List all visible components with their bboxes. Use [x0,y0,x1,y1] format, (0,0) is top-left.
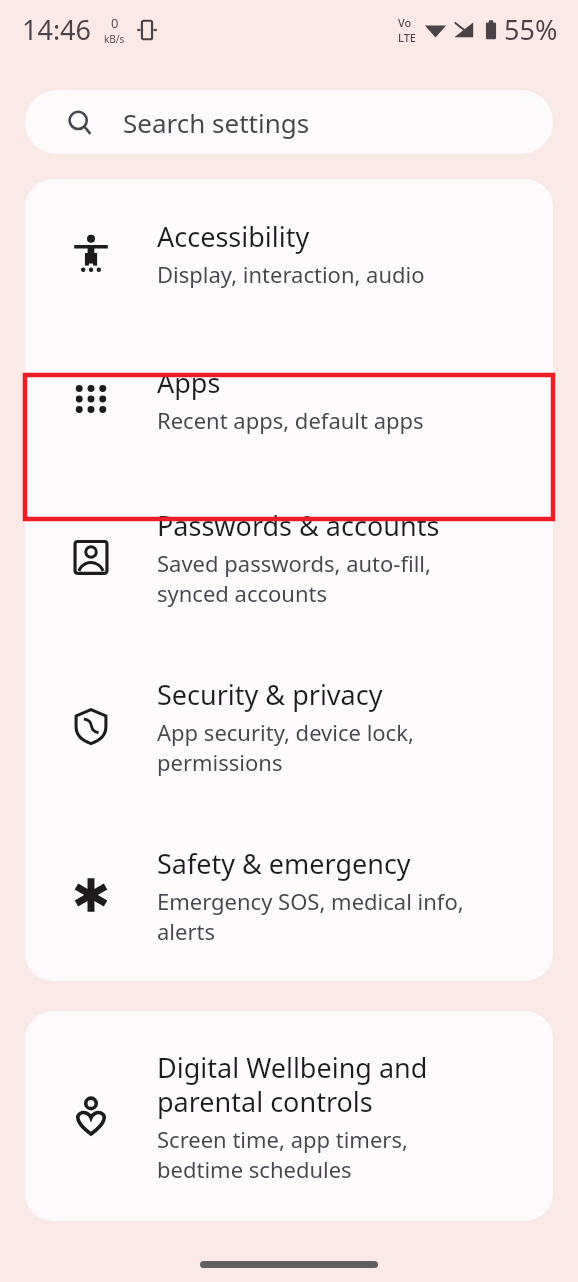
staticText: Digital Wellbeing and parental controls [157,1049,428,1120]
staticText: Vo [398,15,412,30]
staticText: Emergency SOS, medical info, alerts [157,886,464,946]
staticText: Apps [157,364,221,401]
staticText: Saved passwords, auto-fill, synced accou… [157,548,431,608]
staticText: Security & privacy [157,676,383,713]
button[interactable]: Passwords and accounts [25,471,553,643]
staticText: LTE [398,30,416,45]
button[interactable]: Digital Wellbeing and parental controls [25,1011,553,1221]
button[interactable]: Accessibility [25,179,553,327]
button[interactable]: Safety and emergency [25,809,553,981]
staticText: Accessibility [157,218,310,255]
staticText: App security, device lock, permissions [157,717,414,777]
staticText: Recent apps, default apps [157,405,424,435]
staticText: 14:46 [22,11,92,48]
button[interactable]: Search settings [25,90,553,154]
staticText: Display, interaction, audio [157,259,425,289]
staticText: 55% [504,11,558,48]
staticText: Screen time, app timers, bedtime schedul… [157,1124,408,1184]
staticText: Safety & emergency [157,845,411,882]
staticText: 0 [111,14,119,32]
staticText: Passwords & accounts [157,507,440,544]
button[interactable]: Security and privacy [25,643,553,809]
staticText: Search settings [123,105,310,140]
staticText: kB/s [104,32,125,46]
button[interactable]: Apps [25,327,553,471]
